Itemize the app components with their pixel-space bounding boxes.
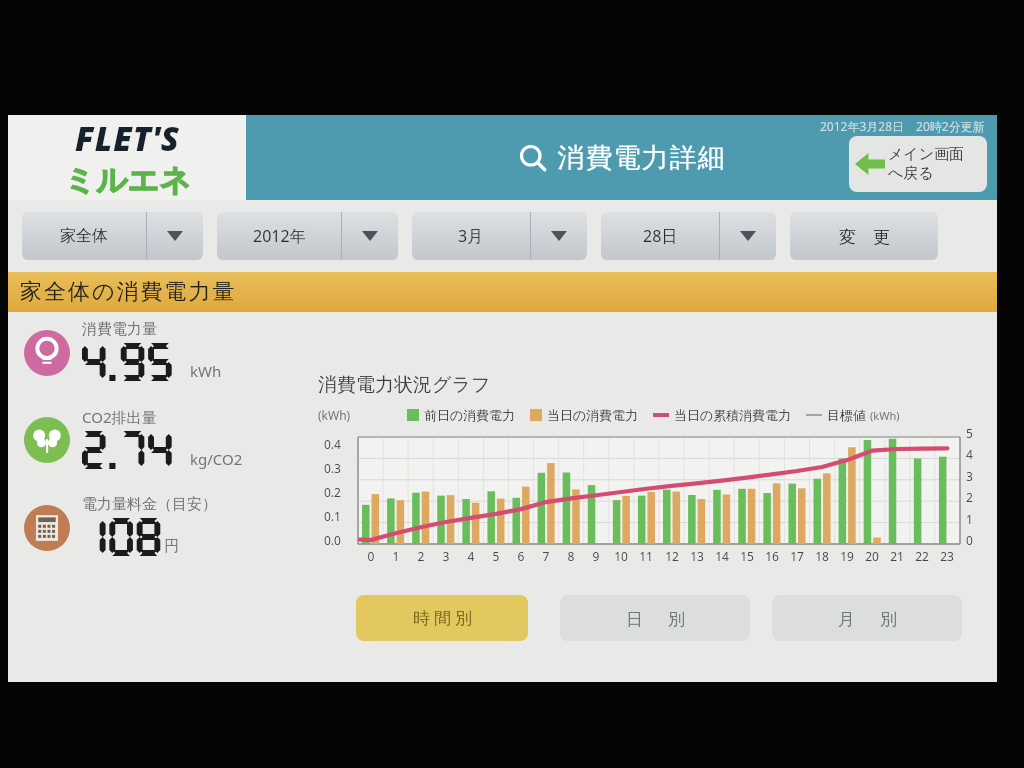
staticText: 0.2 bbox=[324, 484, 341, 500]
button[interactable]: 変 更 bbox=[790, 212, 938, 260]
staticText: 11 bbox=[639, 548, 653, 564]
staticText: 2012年 bbox=[253, 225, 306, 247]
staticText: 23 bbox=[940, 548, 954, 564]
staticText: 10 bbox=[614, 548, 628, 564]
staticText: (kWh) bbox=[318, 407, 351, 423]
staticText: 14 bbox=[715, 548, 729, 564]
staticText: 16 bbox=[765, 548, 779, 564]
staticText: 3 bbox=[966, 468, 973, 484]
staticText: 20:18 bbox=[938, 116, 987, 142]
staticText: 5 bbox=[489, 548, 503, 564]
staticText: 20 bbox=[865, 548, 879, 564]
staticText: 0.0 bbox=[324, 532, 341, 548]
staticText: 電力量料金（目安） bbox=[82, 495, 217, 514]
staticText: 19 bbox=[840, 548, 854, 564]
staticText: 22 bbox=[915, 548, 929, 564]
staticText: (kWh) bbox=[870, 408, 900, 423]
staticText: 12 bbox=[665, 548, 679, 564]
staticText: 2 bbox=[414, 548, 428, 564]
staticText: 5 bbox=[966, 425, 973, 441]
button[interactable]: 日 別 bbox=[560, 595, 750, 641]
staticText: 時間別 bbox=[411, 608, 474, 629]
staticText: メイン画面 bbox=[888, 145, 965, 164]
staticText: 当日の消費電力 bbox=[547, 407, 639, 423]
staticText: 17 bbox=[790, 548, 804, 564]
staticText: kWh bbox=[190, 361, 222, 381]
staticText: kg/CO2 bbox=[190, 449, 243, 469]
staticText: 目標値 bbox=[827, 407, 866, 423]
staticText: 3 bbox=[439, 548, 453, 564]
staticText: 消費電力状況グラフ bbox=[318, 373, 491, 397]
staticText: 6 bbox=[514, 548, 528, 564]
staticText: 2 bbox=[966, 489, 973, 505]
button[interactable]: 月 別 bbox=[772, 595, 962, 641]
staticText: 変 更 bbox=[839, 225, 890, 248]
staticText: 1 bbox=[389, 548, 403, 564]
staticText: 9 bbox=[589, 548, 603, 564]
staticText: 消費電力詳細 bbox=[557, 141, 725, 175]
button[interactable]: メイン画面 bbox=[849, 136, 987, 192]
staticText: 21 bbox=[890, 548, 904, 564]
staticText: 2012年3月28日 20時2分更新 bbox=[820, 118, 985, 134]
staticText: 13 bbox=[690, 548, 704, 564]
staticText: 3月 bbox=[458, 225, 484, 247]
staticText: 月 別 bbox=[836, 607, 899, 630]
staticText: 0 bbox=[364, 548, 378, 564]
staticText: 18 bbox=[815, 548, 829, 564]
staticText: 日 別 bbox=[624, 607, 687, 630]
staticText: 0 bbox=[966, 532, 973, 548]
button[interactable]: 28日 bbox=[601, 212, 776, 260]
staticText: 家全体 bbox=[60, 226, 108, 246]
staticText: 円 bbox=[164, 537, 179, 556]
staticText: ミルエネ bbox=[64, 161, 191, 200]
staticText: 0.1 bbox=[324, 508, 341, 524]
button[interactable]: 2012年 bbox=[217, 212, 398, 260]
staticText: 消費電力量 bbox=[82, 320, 157, 339]
staticText: 4 bbox=[464, 548, 478, 564]
button[interactable]: 時間別 bbox=[356, 595, 528, 641]
staticText: 7 bbox=[539, 548, 553, 564]
staticText: 28日 bbox=[643, 225, 678, 247]
staticText: CO2排出量 bbox=[82, 407, 157, 427]
staticText: 前日の消費電力 bbox=[424, 407, 516, 423]
staticText: FLET'S bbox=[75, 116, 180, 161]
staticText: 0.4 bbox=[324, 436, 341, 452]
staticText: へ戻る bbox=[888, 164, 934, 183]
button[interactable]: 3月 bbox=[412, 212, 587, 260]
staticText: 0.3 bbox=[324, 460, 341, 476]
staticText: 4 bbox=[966, 446, 973, 462]
staticText: 8 bbox=[564, 548, 578, 564]
staticText: 当日の累積消費電力 bbox=[674, 407, 792, 423]
staticText: 家全体の消費電力量 bbox=[20, 278, 237, 306]
button[interactable]: 家全体 bbox=[22, 212, 203, 260]
staticText: 1 bbox=[966, 511, 973, 527]
staticText: 15 bbox=[740, 548, 754, 564]
